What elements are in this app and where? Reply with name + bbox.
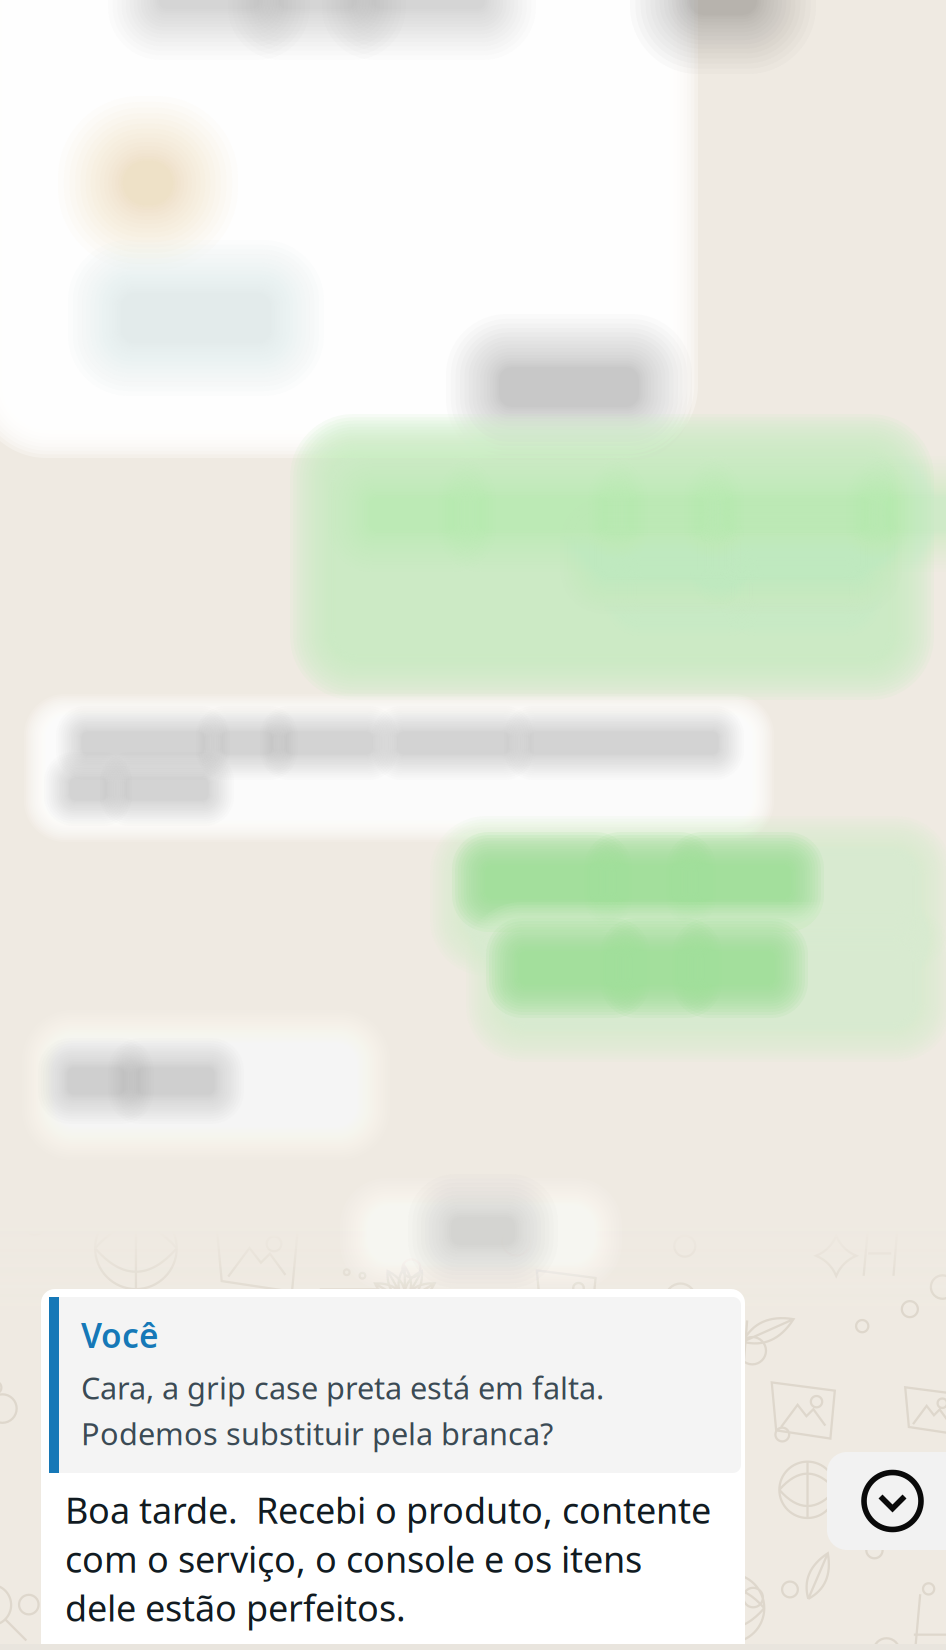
staticText: Você [81,1313,159,1357]
staticText: com o serviço, o console e os itens [65,1535,642,1583]
staticText: Podemos substituir pela branca? [81,1413,553,1454]
staticText: Boa tarde. Recebi o produto, contente [65,1486,711,1534]
button[interactable]: Scroll to bottom [827,1452,946,1550]
staticText: dele estão perfeitos. [65,1584,406,1631]
staticText: Cara, a grip case preta está em falta. [81,1367,604,1408]
